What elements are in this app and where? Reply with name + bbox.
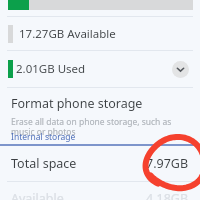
staticText: 17.27GB Available bbox=[19, 26, 116, 42]
button[interactable]: 2.01GB Used bbox=[0, 51, 200, 87]
staticText: Internal storage bbox=[11, 131, 76, 143]
button[interactable]: Available bbox=[0, 190, 200, 200]
staticText: Total space bbox=[11, 155, 77, 172]
staticText: 2.01GB Used bbox=[16, 61, 86, 77]
staticText: Format phone storage bbox=[11, 95, 143, 112]
staticText: Erase all data on phone storage, such as… bbox=[11, 116, 186, 138]
staticText: Available bbox=[11, 190, 64, 200]
button[interactable]: Collapse bbox=[172, 61, 189, 78]
button[interactable]: Format phone storage bbox=[0, 88, 200, 138]
button[interactable]: 17.27GB Available bbox=[0, 17, 200, 50]
staticText: 7.97GB bbox=[146, 155, 189, 172]
staticText: 4.18GB bbox=[146, 190, 189, 200]
button[interactable]: Total space bbox=[0, 146, 200, 180]
